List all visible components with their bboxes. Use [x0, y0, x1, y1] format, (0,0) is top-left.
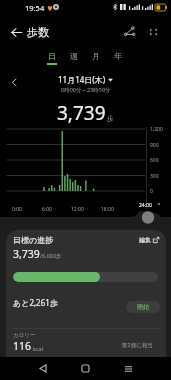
button[interactable]: 編集: [139, 236, 159, 244]
staticText: 0:00: [12, 206, 22, 213]
staticText: 3,739: [57, 100, 106, 126]
staticText: 匰2個に相当: [122, 341, 153, 349]
staticText: 3,739: [13, 247, 40, 261]
staticText: 6:00: [42, 206, 52, 213]
staticText: 1,200: [150, 126, 163, 133]
staticText: 歩数: [27, 25, 49, 39]
staticText: kcal: [33, 345, 44, 352]
staticText: あと2,261歩: [13, 297, 58, 308]
button[interactable]: 11月14日(木): [58, 74, 113, 85]
staticText: 900: [150, 142, 159, 149]
button[interactable]: 開始: [126, 301, 160, 313]
button[interactable]: 週: [61, 46, 87, 68]
button[interactable]: Back: [7, 23, 25, 41]
staticText: 116: [13, 339, 32, 353]
button[interactable]: 月: [83, 46, 109, 68]
staticText: 24:00: [139, 202, 152, 209]
button[interactable]: Home: [73, 357, 97, 380]
staticText: 日: [48, 51, 56, 61]
staticText: 週: [70, 51, 78, 61]
staticText: 目標の進捗: [13, 235, 54, 245]
staticText: 月: [92, 51, 100, 61]
button[interactable]: More options: [144, 22, 163, 41]
button[interactable]: Back: [31, 357, 55, 380]
staticText: 18:00: [101, 206, 114, 213]
staticText: 0時00分～23時59分: [61, 86, 111, 94]
staticText: 19:54: [25, 3, 45, 13]
button[interactable]: Share: [119, 22, 138, 41]
button[interactable]: 年: [105, 46, 131, 68]
button[interactable]: 日: [39, 46, 65, 68]
staticText: 600: [150, 157, 159, 164]
staticText: 0: [150, 188, 153, 195]
staticText: 編集: [139, 236, 151, 244]
staticText: 300: [150, 173, 159, 180]
staticText: 12:00: [71, 206, 84, 213]
staticText: 歩: [107, 115, 114, 123]
staticText: 開始: [137, 303, 149, 311]
staticText: カロリー: [13, 332, 36, 339]
staticText: 11月14日(木): [58, 74, 106, 85]
staticText: 年: [114, 51, 122, 61]
staticText: /6,000歩: [40, 252, 62, 260]
button[interactable]: Recent apps: [116, 357, 140, 380]
button[interactable]: Previous day: [7, 75, 22, 90]
